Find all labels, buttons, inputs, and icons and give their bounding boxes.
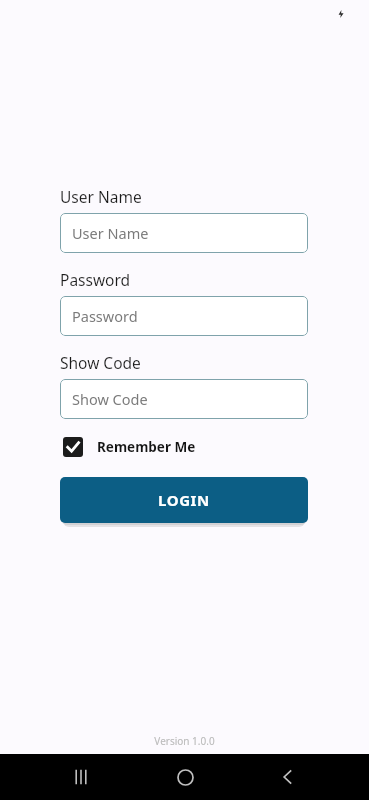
staticText: Version 1.0.0 — [0, 734, 369, 748]
staticText: User Name — [60, 186, 142, 207]
staticText: Password — [72, 306, 138, 326]
button[interactable]: LOGIN — [60, 477, 308, 523]
staticText: Remember Me — [97, 438, 196, 456]
button[interactable]: Password — [60, 296, 308, 336]
staticText: User Name — [72, 223, 149, 243]
staticText: LOGIN — [158, 490, 210, 510]
button[interactable]: Remember Me — [63, 435, 196, 459]
button[interactable]: User Name — [60, 213, 308, 253]
staticText: Show Code — [60, 352, 141, 373]
button[interactable]: Recent apps — [59, 755, 103, 799]
staticText: Password — [60, 269, 131, 290]
staticText: Show Code — [72, 389, 148, 409]
button[interactable]: Home — [163, 755, 207, 799]
button[interactable]: Show Code — [60, 379, 308, 419]
button[interactable]: Back — [266, 755, 310, 799]
